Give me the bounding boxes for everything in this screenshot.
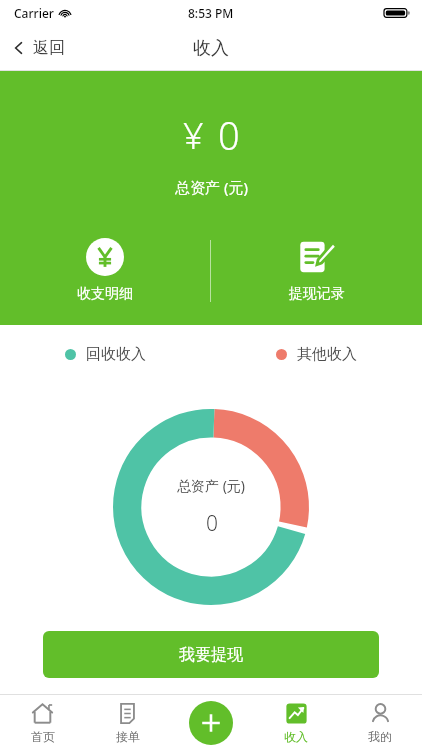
staticText: 其他收入 — [297, 345, 357, 364]
staticText: ¥ — [183, 111, 204, 160]
staticText: 接单 — [116, 729, 140, 744]
button[interactable]: 返回 — [0, 26, 77, 70]
staticText: 收支明细 — [77, 285, 133, 303]
button[interactable]: Add — [189, 701, 233, 745]
staticText: Carrier — [14, 5, 54, 21]
other: Income — [285, 702, 308, 725]
button[interactable]: 收支明细 — [0, 238, 210, 303]
staticText: 返回 — [33, 38, 65, 58]
staticText: 我的 — [368, 729, 392, 744]
staticText: 0 — [218, 109, 240, 161]
staticText: 首页 — [31, 729, 55, 744]
staticText: 收入 — [193, 37, 229, 60]
button[interactable]: Orders — [85, 695, 170, 750]
button[interactable]: Income — [254, 695, 338, 750]
button[interactable]: 提现记录 — [211, 238, 422, 303]
button[interactable]: Profile — [338, 695, 422, 750]
staticText: 总资产 (元) — [177, 476, 246, 495]
staticText: 0 — [206, 509, 218, 538]
button[interactable]: Home — [0, 695, 85, 750]
button[interactable]: 回收收入 — [0, 345, 211, 364]
button[interactable]: 我要提现 — [43, 631, 379, 678]
staticText: 提现记录 — [289, 285, 345, 303]
staticText: 收入 — [284, 729, 308, 744]
staticText: 总资产 (元) — [175, 177, 248, 197]
staticText: 回收收入 — [86, 345, 146, 364]
button[interactable]: 其他收入 — [211, 345, 422, 364]
staticText: 我要提现 — [179, 645, 243, 665]
staticText: 8:53 PM — [188, 5, 234, 21]
other: Home — [31, 702, 54, 725]
other: Profile — [369, 702, 392, 725]
other: Orders — [116, 702, 139, 725]
